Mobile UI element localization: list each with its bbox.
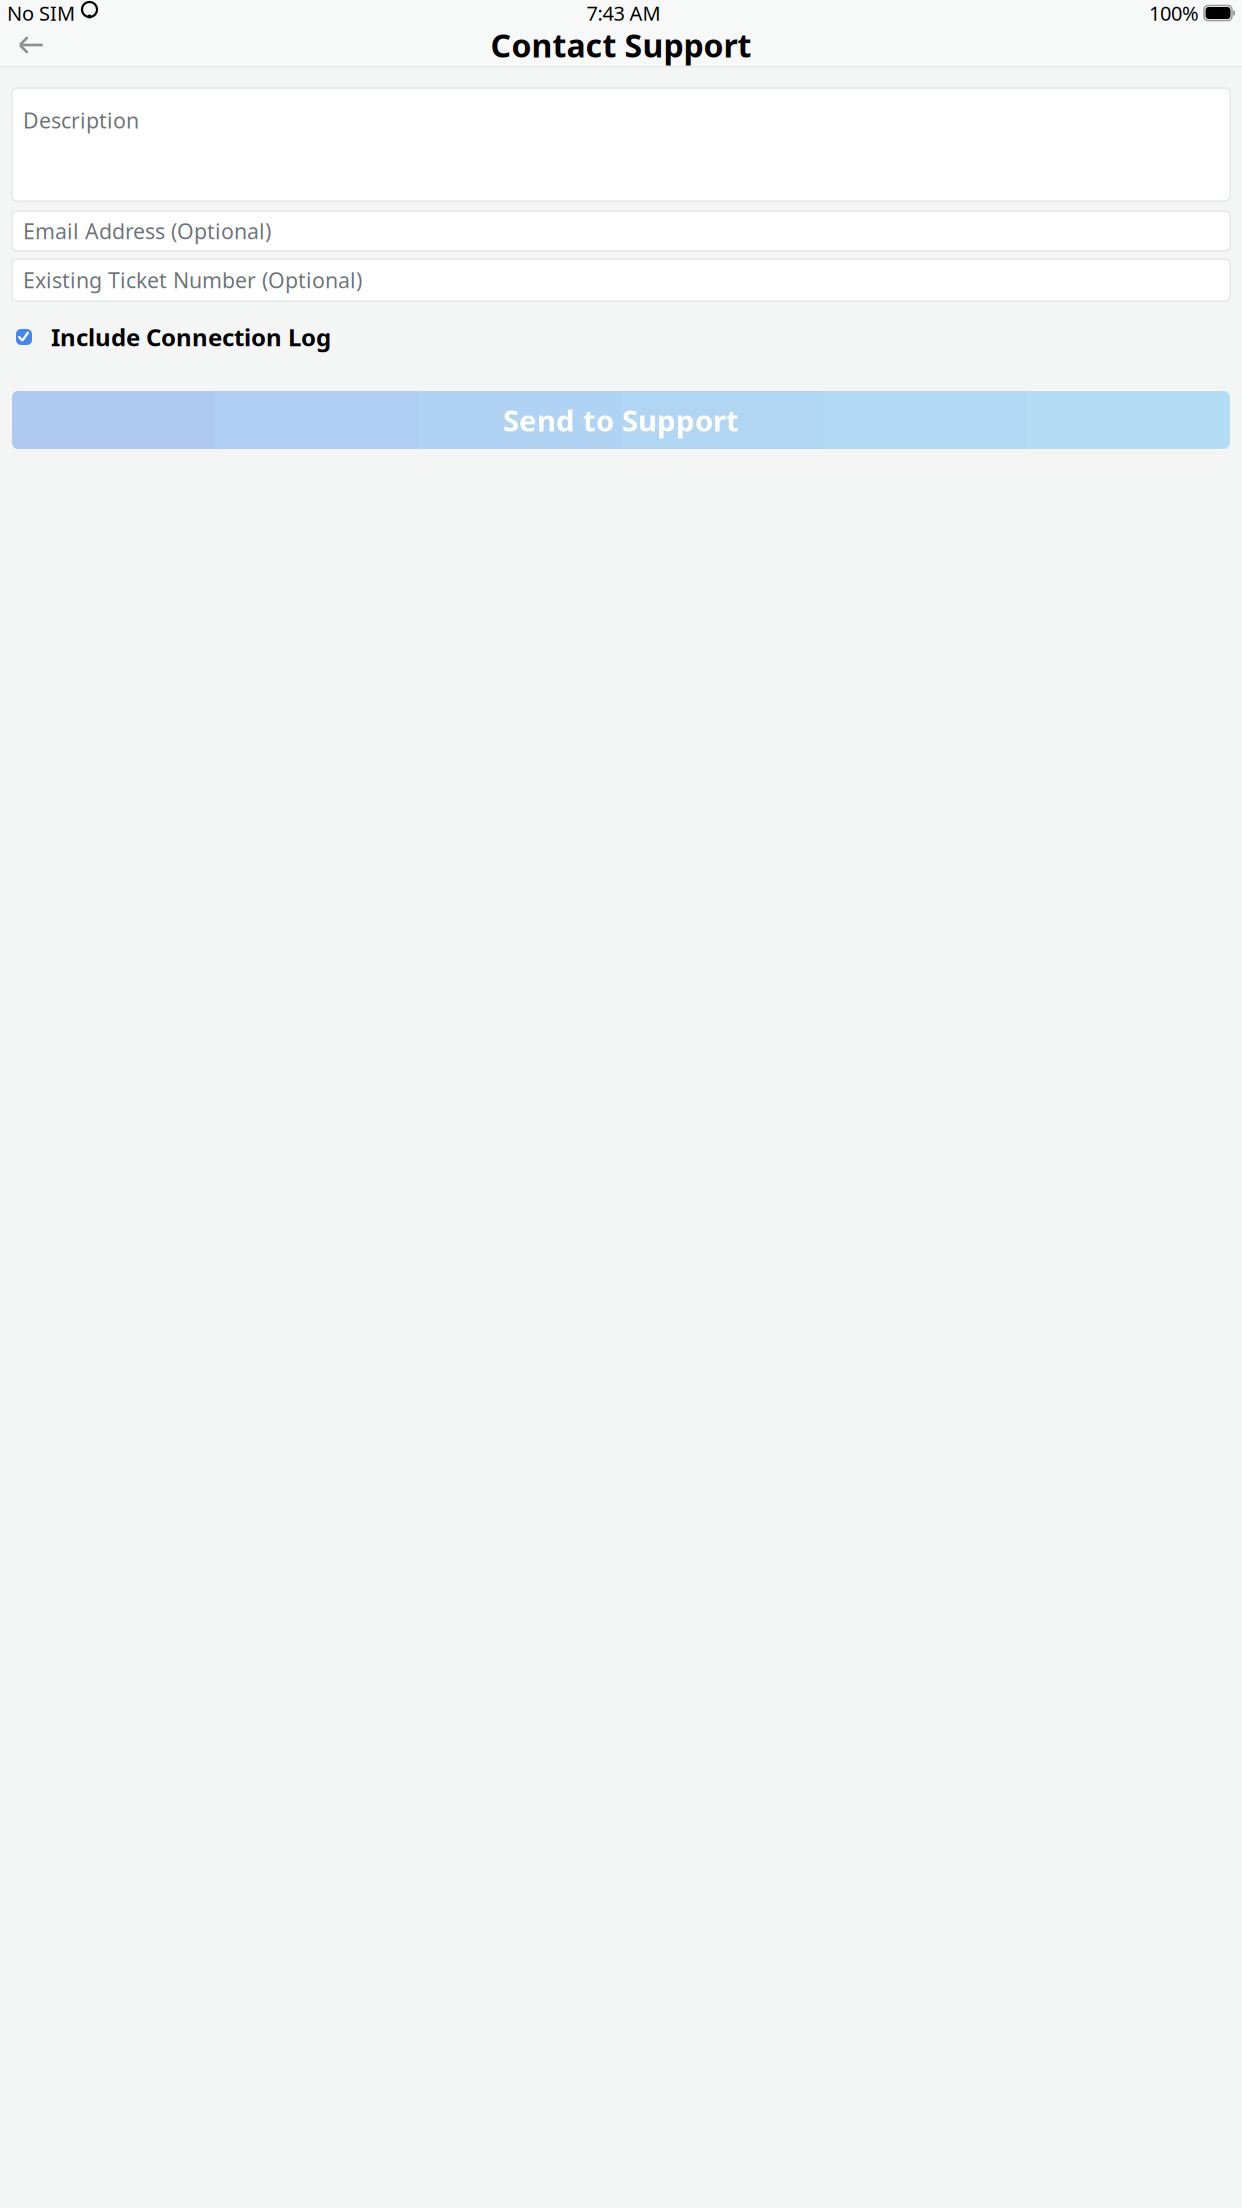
staticText: Include Connection Log [51, 321, 331, 353]
staticText: 100% [1149, 0, 1199, 26]
staticText: Description [23, 106, 139, 134]
button[interactable]: Send to Support [12, 391, 1230, 449]
staticText: No SIM [7, 0, 75, 26]
button[interactable]: Back [8, 21, 56, 69]
staticText: Email Address (Optional) [23, 217, 271, 245]
staticText: Contact Support [490, 24, 751, 66]
button[interactable]: Description [12, 88, 1230, 201]
button[interactable]: Include Connection Log [12, 321, 1230, 353]
button[interactable]: Email Address (Optional) [12, 211, 1230, 251]
staticText: Existing Ticket Number (Optional) [23, 266, 362, 294]
button[interactable]: Existing Ticket Number (Optional) [12, 259, 1230, 301]
staticText: Send to Support [503, 400, 739, 439]
staticText: 7:43 AM [586, 0, 660, 26]
